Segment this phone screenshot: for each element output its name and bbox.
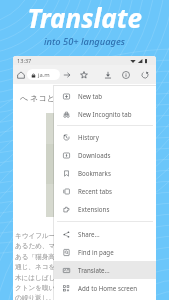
staticText: Extensions bbox=[78, 205, 110, 213]
staticText: Bookmarks bbox=[78, 169, 111, 177]
staticText: New Incognito tab bbox=[78, 110, 132, 118]
staticText: Recent tabs bbox=[78, 187, 112, 195]
button[interactable]: Bookmarks bbox=[54, 164, 156, 182]
button[interactable]: Page info bbox=[119, 68, 132, 81]
button[interactable]: Reload bbox=[138, 68, 151, 81]
staticText: ある「猫身高」 bbox=[15, 253, 62, 261]
staticText: Translate... bbox=[78, 266, 110, 274]
staticText: ja.m bbox=[38, 71, 50, 79]
staticText: キウイフルーツ bbox=[15, 232, 63, 240]
staticText: クトンを嗅いで bbox=[15, 284, 63, 292]
button[interactable]: Extensions bbox=[54, 200, 156, 218]
staticText: Add to Home screen bbox=[78, 284, 138, 292]
staticText: Share... bbox=[78, 230, 100, 238]
staticText: へ ネコとマ bbox=[20, 92, 64, 103]
button[interactable]: Downloads bbox=[54, 146, 156, 164]
staticText: Downloads bbox=[78, 151, 111, 159]
button[interactable]: Home bbox=[14, 68, 27, 81]
button[interactable]: Recent tabs bbox=[54, 182, 156, 200]
staticText: into 50+ languages bbox=[0, 35, 169, 48]
button[interactable]: Add to Home screen bbox=[54, 279, 156, 297]
button[interactable]: Find in page bbox=[54, 243, 156, 261]
staticText: Translate bbox=[0, 0, 169, 35]
staticText: Find in page bbox=[78, 248, 114, 256]
button[interactable]: History bbox=[54, 128, 156, 146]
button[interactable]: New tab bbox=[54, 87, 156, 105]
staticText: 13:37 bbox=[17, 57, 32, 65]
staticText: New tab bbox=[78, 92, 103, 100]
staticText: あるため、マタ bbox=[15, 242, 63, 250]
staticText: 通じ、ネコを興 bbox=[15, 263, 62, 271]
staticText: の繰り返し。犬 bbox=[15, 294, 62, 300]
button[interactable]: New Incognito tab bbox=[54, 105, 156, 123]
button[interactable]: Download bbox=[101, 68, 114, 81]
button[interactable]: Translate... bbox=[54, 261, 156, 279]
button[interactable]: Share... bbox=[54, 225, 156, 243]
button[interactable]: Forward bbox=[60, 68, 73, 81]
staticText: 木にはしばしば bbox=[15, 274, 63, 282]
button[interactable]: Bookmark bbox=[77, 68, 90, 81]
button[interactable]: ja.m bbox=[27, 69, 60, 80]
staticText: History bbox=[78, 133, 99, 141]
